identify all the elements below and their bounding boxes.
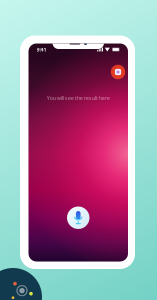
staticText: You will see the result here xyxy=(47,94,110,102)
button[interactable]: Record xyxy=(67,206,89,229)
button[interactable]: Stop xyxy=(110,64,126,80)
staticText: 9:41 xyxy=(36,46,46,53)
